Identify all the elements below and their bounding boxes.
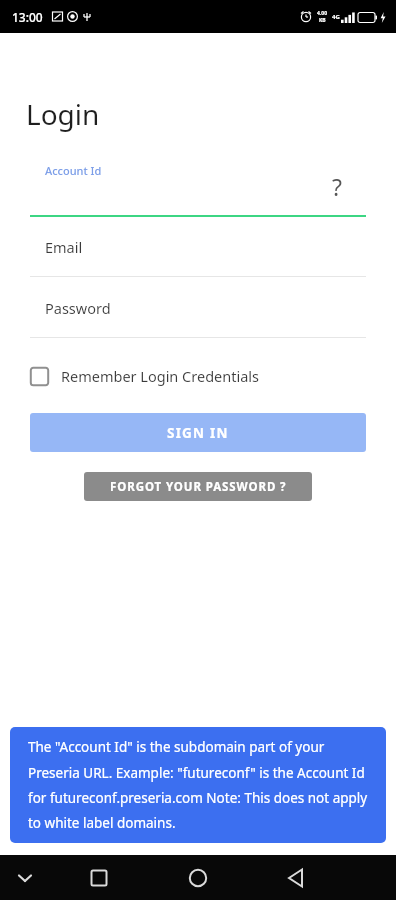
- staticText: 13:00: [12, 9, 43, 25]
- button[interactable]: SIGN IN: [30, 413, 366, 452]
- button[interactable]: Email: [0, 222, 396, 277]
- staticText: Account Id: [45, 163, 102, 178]
- button[interactable]: Help about Account Id: [324, 171, 350, 197]
- staticText: SIGN IN: [167, 424, 229, 442]
- button[interactable]: The "Account Id" is the subdomain part o…: [10, 727, 386, 843]
- staticText: 4G: [332, 13, 340, 21]
- staticText: Login: [26, 95, 100, 133]
- staticText: 4.00: [317, 10, 327, 17]
- staticText: KB: [319, 17, 326, 24]
- staticText: Email: [45, 237, 83, 257]
- button[interactable]: Account Id: [0, 157, 396, 217]
- button[interactable]: Home: [184, 864, 212, 892]
- button[interactable]: Hide keyboard: [11, 864, 39, 892]
- button[interactable]: Recent apps: [85, 864, 113, 892]
- staticText: Password: [45, 298, 111, 318]
- staticText: Remember Login Credentials: [61, 366, 259, 386]
- staticText: ?: [332, 171, 342, 197]
- button[interactable]: Remember Login Credentials: [30, 361, 366, 391]
- button[interactable]: Back: [283, 864, 311, 892]
- button[interactable]: Password: [0, 283, 396, 338]
- staticText: The "Account Id" is the subdomain part o…: [28, 738, 372, 832]
- button[interactable]: FORGOT YOUR PASSWORD ?: [84, 472, 312, 501]
- staticText: FORGOT YOUR PASSWORD ?: [110, 479, 287, 495]
